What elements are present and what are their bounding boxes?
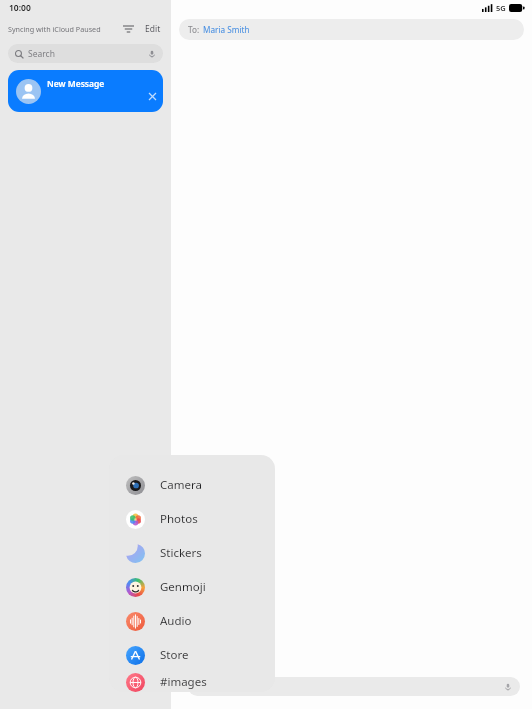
staticText: 5G [496,3,506,13]
staticText: 10:00 [9,2,31,14]
staticText: Genmoji [160,579,206,595]
staticText: Store [160,647,189,663]
button[interactable]: Audio [109,604,275,638]
button[interactable]: To: [179,19,524,40]
staticText: Search [28,48,55,60]
staticText: Edit [145,23,161,35]
staticText: Stickers [160,545,202,561]
staticText: Maria Smith [203,24,250,35]
button[interactable]: iMessage [188,677,520,696]
staticText: Audio [160,613,192,629]
button[interactable]: New Message [8,70,163,112]
staticText: New Message [47,78,105,90]
button[interactable]: Edit [143,23,163,35]
staticText: Photos [160,511,198,527]
button[interactable]: #images [109,672,275,692]
staticText: Camera [160,477,202,493]
button[interactable]: Filter [119,20,137,38]
button[interactable]: Genmoji [109,570,275,604]
staticText: #images [160,674,207,690]
button[interactable]: Stickers [109,536,275,570]
button[interactable]: Photos [109,502,275,536]
button[interactable]: Close [146,90,158,102]
button[interactable]: Search [8,44,163,63]
staticText: To: [188,24,200,35]
staticText: Syncing with iCloud Paused [8,24,101,34]
button[interactable]: Camera [109,468,275,502]
button[interactable]: Store [109,638,275,672]
staticText: iMessage [196,681,233,692]
